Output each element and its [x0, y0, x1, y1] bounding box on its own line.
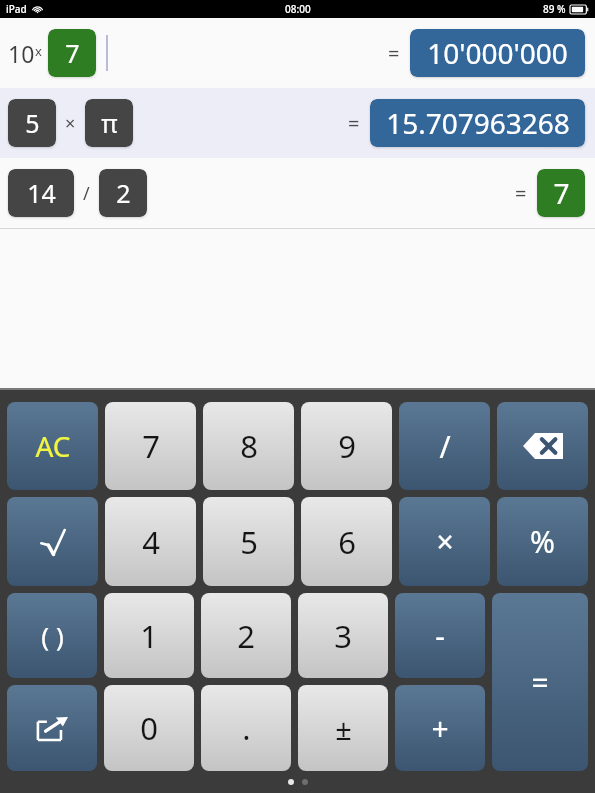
staticText: 15.707963268: [386, 104, 570, 142]
staticText: 8: [240, 425, 258, 467]
staticText: ±: [335, 709, 352, 748]
staticText: %: [530, 521, 555, 562]
button[interactable]: 9: [301, 402, 392, 490]
staticText: 89 %: [543, 2, 566, 16]
staticText: 1: [140, 615, 158, 657]
button[interactable]: 10'000'000: [410, 29, 585, 77]
button[interactable]: 2: [201, 593, 291, 678]
button[interactable]: 15.707963268: [370, 99, 585, 147]
button[interactable]: Share: [7, 685, 97, 771]
button[interactable]: 8: [203, 402, 294, 490]
staticText: 14: [27, 176, 56, 210]
staticText: 6: [338, 521, 356, 563]
button[interactable]: 0: [104, 685, 194, 771]
button[interactable]: .: [201, 685, 291, 771]
staticText: π: [101, 106, 118, 140]
staticText: AC: [35, 427, 71, 465]
staticText: .: [242, 707, 251, 749]
staticText: =: [388, 40, 400, 67]
button[interactable]: 10: [0, 18, 595, 88]
staticText: 4: [142, 521, 160, 563]
button[interactable]: 7: [48, 29, 96, 77]
button[interactable]: 14: [0, 158, 595, 228]
staticText: 2: [237, 615, 255, 657]
button[interactable]: 3: [298, 593, 388, 678]
staticText: ×: [65, 111, 76, 136]
staticText: 10: [8, 38, 35, 69]
staticText: x: [35, 42, 42, 60]
staticText: iPad: [6, 2, 27, 16]
staticText: 7: [65, 36, 80, 70]
staticText: ×: [436, 521, 454, 562]
staticText: +: [431, 708, 449, 749]
button[interactable]: Square root: [7, 497, 98, 586]
button[interactable]: /: [399, 402, 490, 490]
button[interactable]: 7: [105, 402, 196, 490]
button[interactable]: =: [492, 593, 588, 771]
staticText: /: [439, 426, 451, 467]
staticText: 9: [338, 425, 356, 467]
button[interactable]: +: [395, 685, 485, 771]
staticText: 7: [142, 425, 160, 467]
staticText: 7: [553, 174, 570, 212]
button[interactable]: 5: [0, 88, 595, 158]
staticText: /: [83, 181, 90, 206]
staticText: 2: [116, 176, 131, 210]
staticText: =: [515, 180, 527, 207]
staticText: ( ): [41, 618, 64, 653]
staticText: 5: [25, 106, 40, 140]
button[interactable]: ( ): [7, 593, 97, 678]
button[interactable]: Backspace: [497, 402, 588, 490]
staticText: =: [531, 662, 549, 703]
button[interactable]: 4: [105, 497, 196, 586]
button[interactable]: 14: [8, 169, 74, 217]
button[interactable]: 6: [301, 497, 392, 586]
button[interactable]: 5: [8, 99, 56, 147]
staticText: -: [435, 615, 445, 656]
button[interactable]: %: [497, 497, 588, 586]
staticText: =: [348, 110, 360, 137]
staticText: 0: [140, 707, 158, 749]
button[interactable]: -: [395, 593, 485, 678]
button[interactable]: π: [85, 99, 133, 147]
staticText: 08:00: [285, 2, 311, 16]
button[interactable]: 5: [203, 497, 294, 586]
staticText: 3: [334, 615, 352, 657]
button[interactable]: ±: [298, 685, 388, 771]
button[interactable]: 7: [537, 169, 585, 217]
button[interactable]: AC: [7, 402, 98, 490]
staticText: 10'000'000: [427, 34, 568, 72]
button[interactable]: 1: [104, 593, 194, 678]
button[interactable]: ×: [399, 497, 490, 586]
button[interactable]: 2: [99, 169, 147, 217]
staticText: 5: [240, 521, 258, 563]
